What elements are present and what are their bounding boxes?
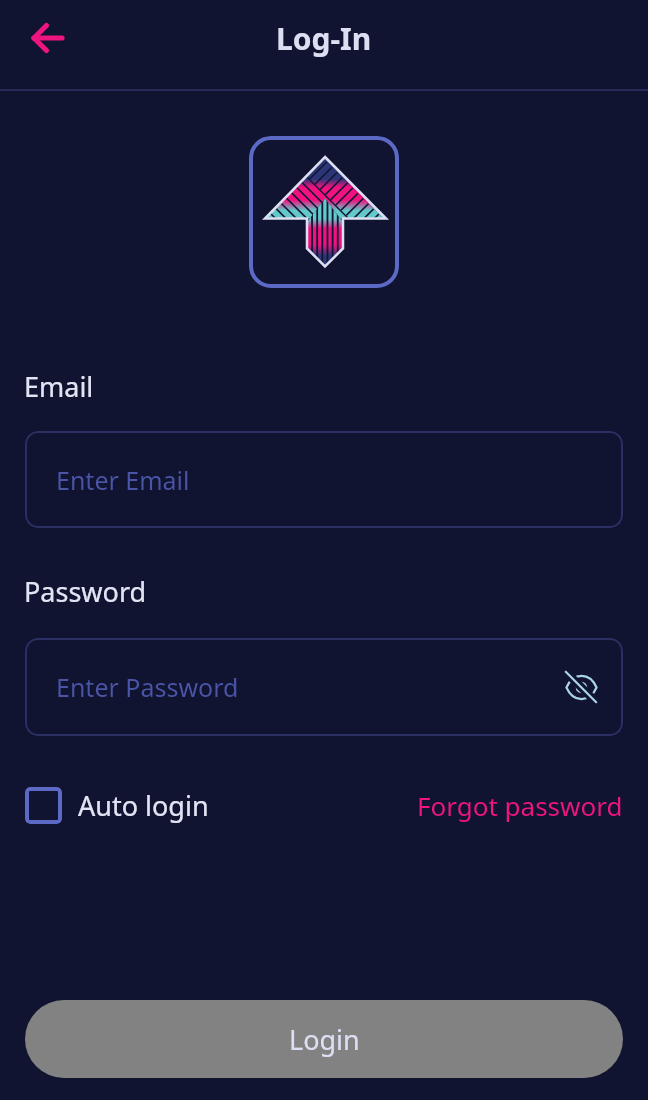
- staticText: Forgot password: [417, 788, 623, 823]
- staticText: Enter Password: [56, 670, 239, 704]
- button[interactable]: Forgot password: [417, 788, 623, 823]
- staticText: Password: [24, 573, 147, 610]
- staticText: Email: [24, 368, 94, 405]
- staticText: Enter Email: [56, 463, 190, 497]
- button[interactable]: Enter Email: [25, 431, 623, 528]
- button[interactable]: Show password: [557, 663, 605, 711]
- staticText: Login: [289, 1021, 360, 1058]
- button[interactable]: Enter Password: [25, 638, 623, 736]
- staticText: Log-In: [276, 18, 372, 59]
- staticText: Auto login: [78, 787, 209, 824]
- button[interactable]: Login: [25, 1000, 623, 1078]
- button[interactable]: Back: [14, 20, 66, 56]
- button[interactable]: Auto login: [25, 787, 209, 824]
